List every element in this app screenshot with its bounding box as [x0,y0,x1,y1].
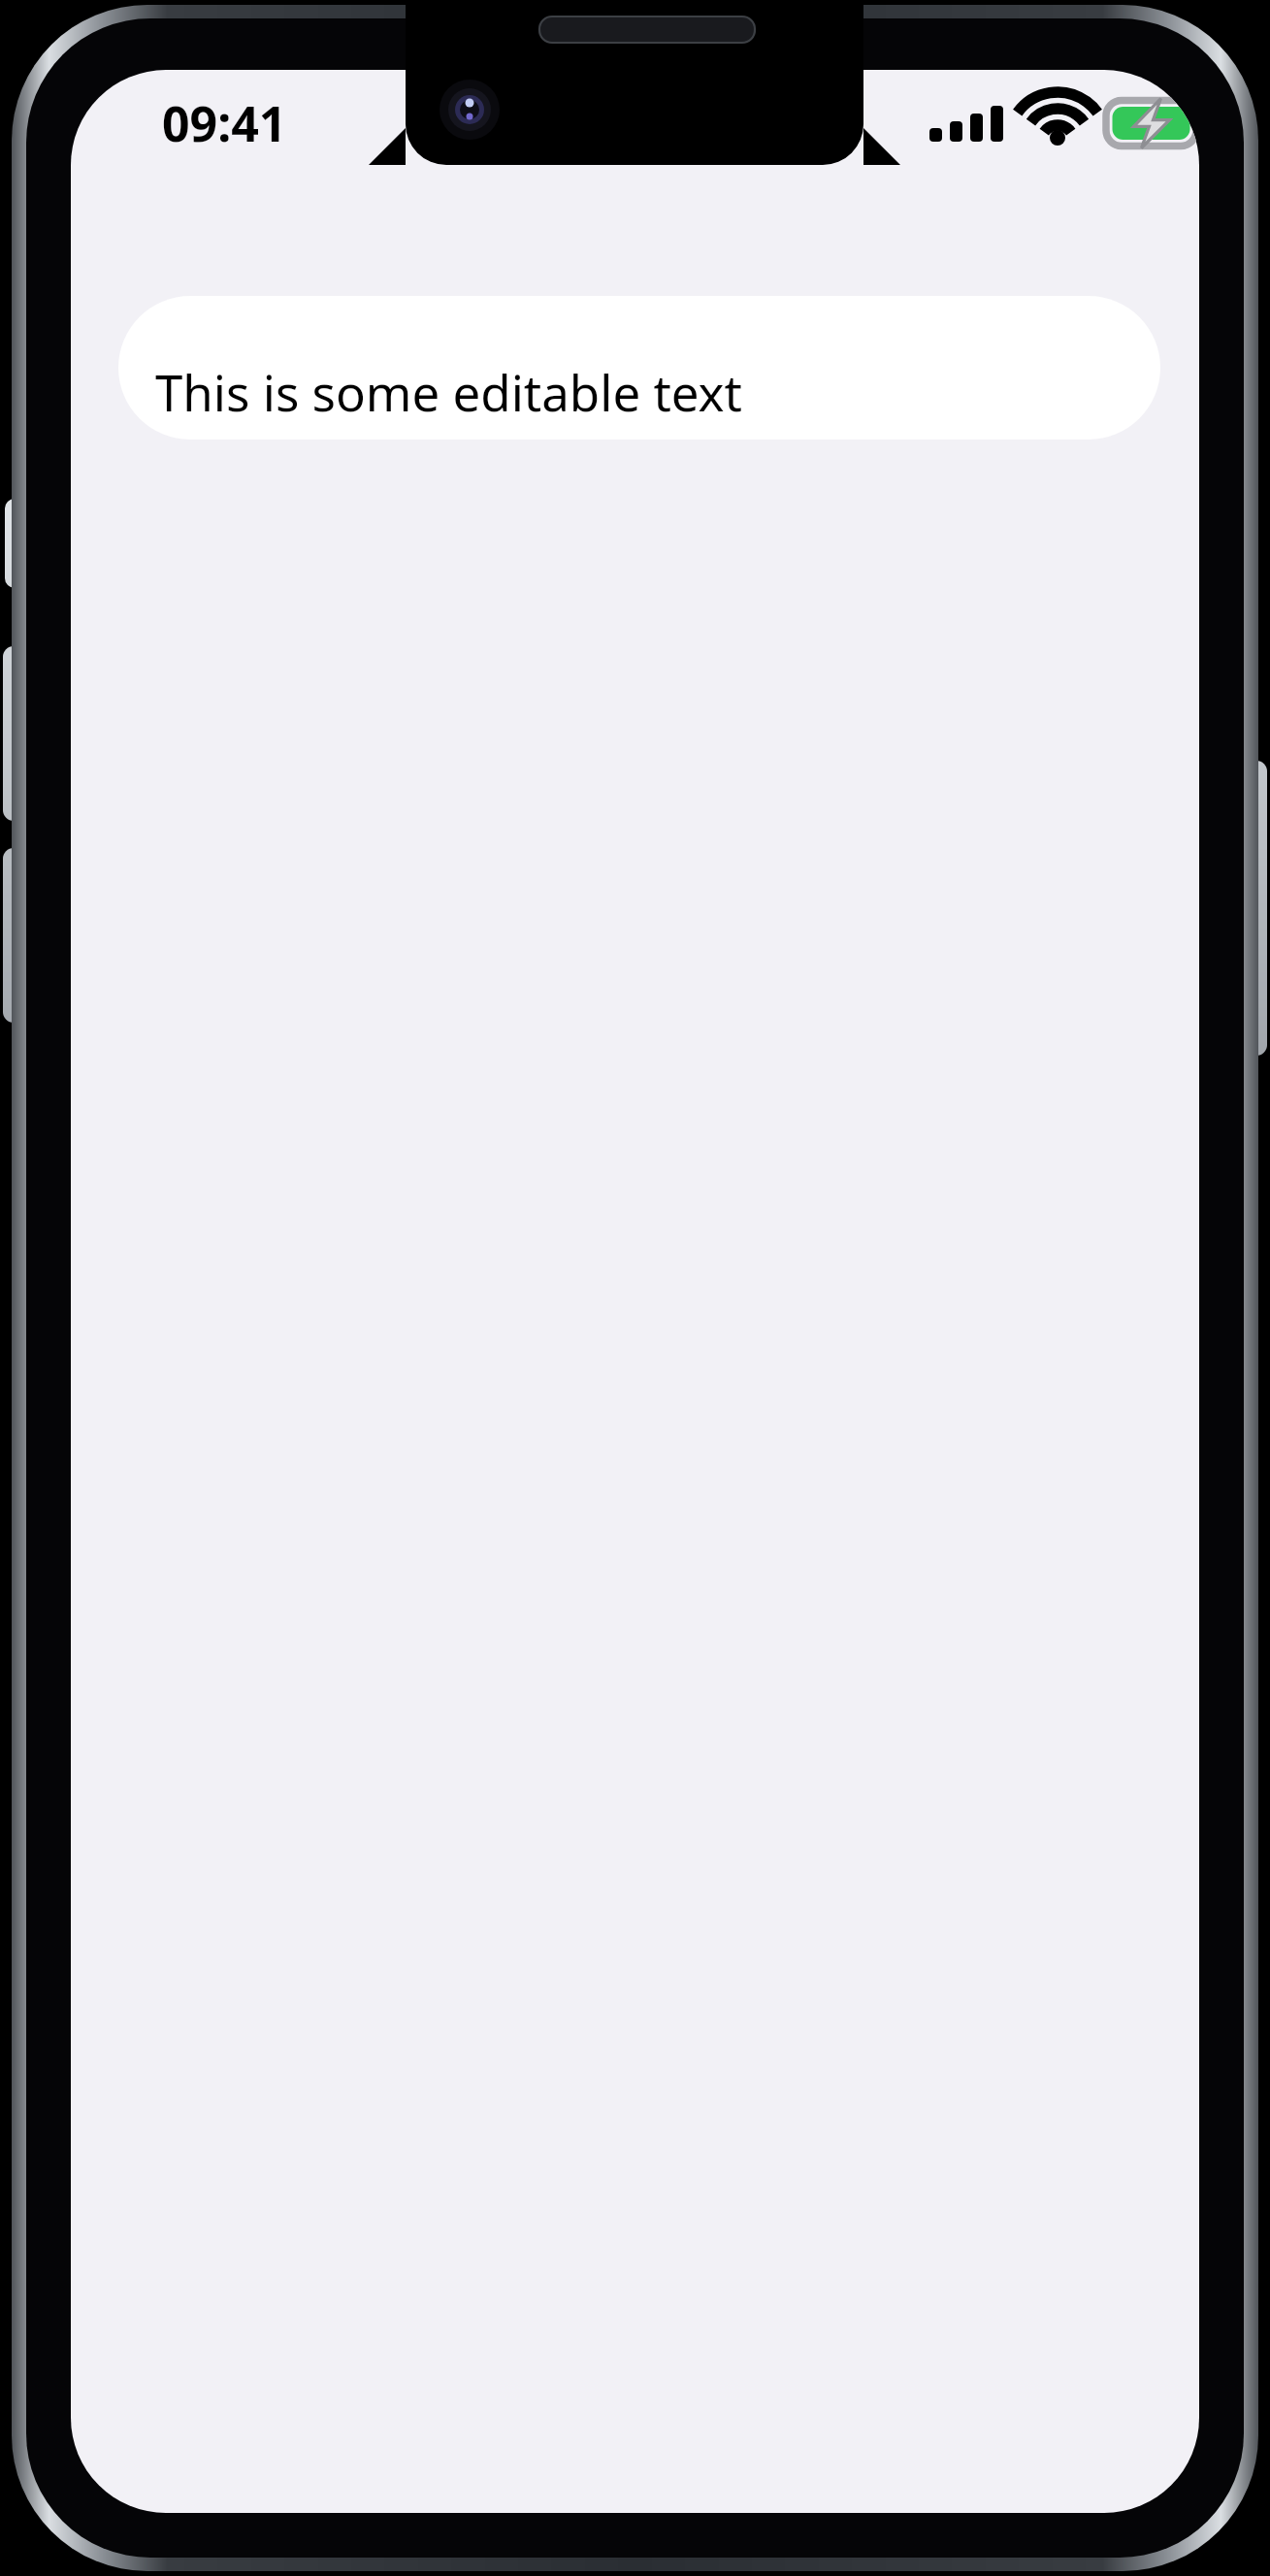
staticText: This is some editable text [155,358,742,425]
button[interactable]: This is some editable text [118,296,1160,440]
staticText: 09:41 [162,90,287,156]
other: Signal, Wi-Fi and battery status [929,94,1155,152]
